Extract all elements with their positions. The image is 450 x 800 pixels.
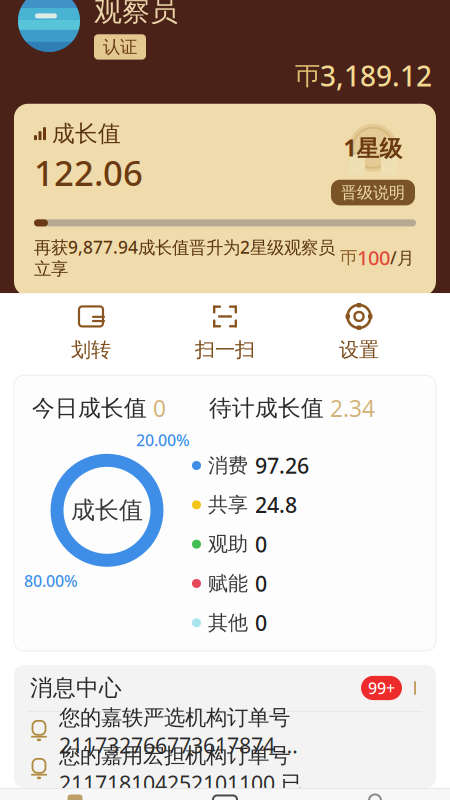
button[interactable]: 划转 xyxy=(24,296,158,368)
button[interactable]: 我的 xyxy=(300,786,450,800)
staticText: 100 xyxy=(357,244,390,271)
staticText: 0 xyxy=(147,393,166,423)
staticText: 3,189.12 xyxy=(320,57,432,94)
staticText: 设置 xyxy=(339,337,379,362)
button[interactable]: 工匠 xyxy=(150,786,300,800)
staticText: 成长值 xyxy=(71,496,143,525)
staticText: 帀 xyxy=(295,60,320,91)
staticText: 您的嘉用宏担机构订单号 211718104252101100 已 xyxy=(59,741,302,797)
button[interactable]: 优品 xyxy=(0,786,150,800)
staticText: 99+ xyxy=(368,677,395,699)
staticText: /月 xyxy=(390,246,414,269)
staticText: 您的嘉轶严选机构订单号 211732766773617874 … xyxy=(59,703,298,759)
button[interactable]: 晋级说明 xyxy=(331,180,415,205)
button[interactable]: 设置 xyxy=(292,296,426,368)
staticText: 观助 xyxy=(208,532,248,556)
staticText: 20.00% xyxy=(136,429,190,450)
staticText: 赋能 xyxy=(208,571,248,596)
button[interactable]: 您的嘉轶严选机构订单号 211732766773617874 … xyxy=(14,712,436,750)
staticText: 帀 xyxy=(335,247,357,268)
button[interactable]: 消息中心 xyxy=(14,665,436,711)
staticText: 0 xyxy=(255,609,267,637)
button[interactable]: 您的嘉用宏担机构订单号 211718104252101100 已 xyxy=(14,750,436,788)
staticText: 122.06 xyxy=(34,150,143,196)
button[interactable]: 认证 xyxy=(94,34,146,60)
staticText: 1星级 xyxy=(343,133,402,163)
staticText: 其他 xyxy=(208,610,248,635)
staticText: 晋级说明 xyxy=(341,183,405,202)
staticText: 划转 xyxy=(71,337,111,362)
staticText: 0 xyxy=(255,530,267,558)
staticText: 共享 xyxy=(208,492,248,517)
staticText: 80.00% xyxy=(24,570,78,591)
staticText: 0 xyxy=(255,569,267,598)
staticText: 97.26 xyxy=(255,451,309,480)
staticText: 成长值 xyxy=(52,120,121,147)
staticText: 待计成长值 xyxy=(209,394,324,422)
staticText: 观察员 xyxy=(94,0,178,28)
staticText: 认证 xyxy=(103,36,137,58)
staticText: 消费 xyxy=(208,453,248,478)
button[interactable]: 扫一扫 xyxy=(158,296,292,368)
staticText: 2.34 xyxy=(324,393,375,423)
staticText: 再获9,877.94成长值晋升为2星级观察员立享 xyxy=(34,235,335,280)
staticText: 消息中心 xyxy=(30,674,122,702)
staticText: 扫一扫 xyxy=(195,337,255,362)
staticText: 今日成长值 xyxy=(32,394,147,422)
staticText: 24.8 xyxy=(255,491,297,519)
